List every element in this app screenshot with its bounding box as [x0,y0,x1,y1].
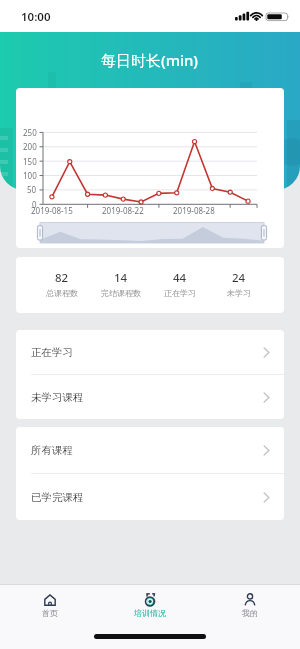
staticText: 正在学习 [31,346,73,359]
staticText: 82 [55,270,69,286]
button[interactable]: 44 [150,257,209,310]
staticText: 正在学习 [164,288,196,298]
staticText: 总课程数 [46,288,78,298]
staticText: 未学习课程 [31,391,84,404]
button[interactable]: 82 [32,257,91,310]
staticText: 44 [173,270,187,286]
staticText: 培训情况 [134,608,166,618]
button[interactable]: 24 [209,257,268,310]
staticText: 完结课程数 [101,288,141,298]
button[interactable]: 培训情况 [100,585,200,633]
staticText: 未学习 [227,288,251,298]
staticText: 所有课程 [31,444,73,457]
staticText: 14 [114,270,128,286]
staticText: 150 [23,156,37,167]
staticText: 每日时长(min) [101,50,199,70]
button[interactable]: 所有课程 [16,427,284,473]
staticText: 24 [232,270,246,286]
button[interactable]: 未学习课程 [16,375,284,419]
button[interactable]: 已学完课程 [16,474,284,520]
staticText: 250 [23,127,37,138]
button[interactable]: 14 [91,257,150,310]
staticText: 50 [27,184,37,195]
staticText: 首页 [42,608,58,618]
staticText: 10:00 [21,9,51,25]
button[interactable]: 我的 [200,585,300,633]
button[interactable]: 首页 [0,585,100,633]
staticText: 100 [23,170,37,181]
staticText: 已学完课程 [31,491,84,504]
staticText: 2019-08-28 [173,205,215,216]
staticText: 200 [23,141,37,152]
staticText: 2019-08-22 [102,205,144,216]
button[interactable]: 正在学习 [16,330,284,374]
staticText: 2019-08-15 [31,205,73,216]
staticText: 我的 [242,608,258,618]
staticText: 0 [32,199,37,210]
